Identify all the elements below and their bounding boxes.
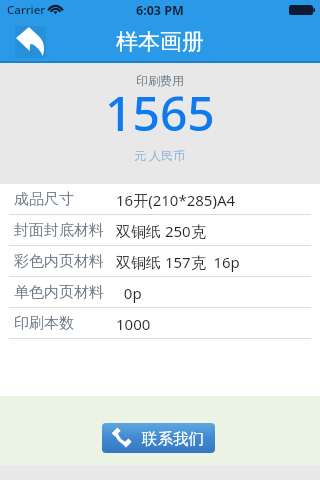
button[interactable]: 印刷本数 xyxy=(0,308,320,339)
staticText: 16开(210*285)A4 xyxy=(116,190,236,210)
staticText: 元 人民币 xyxy=(134,147,186,163)
button[interactable]: 封面封底材料 xyxy=(0,215,320,246)
staticText: Carrier xyxy=(7,2,46,18)
staticText: 彩色内页材料 xyxy=(14,252,104,271)
staticText: 1565 xyxy=(105,80,215,145)
staticText: 样本画册 xyxy=(116,28,204,56)
staticText: 双铜纸 250克 xyxy=(116,221,206,241)
button[interactable]: 联系我们 xyxy=(102,423,215,453)
staticText: 单色内页材料 xyxy=(14,283,104,302)
button[interactable]: Back xyxy=(15,26,46,58)
staticText: 双铜纸 157克 16p xyxy=(116,252,240,272)
staticText: 6:03 PM xyxy=(136,2,184,19)
staticText: 0p xyxy=(116,283,142,303)
button[interactable]: 单色内页材料 xyxy=(0,277,320,308)
staticText: 印刷本数 xyxy=(14,314,74,333)
button[interactable]: 彩色内页材料 xyxy=(0,246,320,277)
staticText: 成品尺寸 xyxy=(14,190,74,209)
staticText: 印刷费用 xyxy=(136,73,184,88)
staticText: 1000 xyxy=(116,314,151,334)
staticText: 封面封底材料 xyxy=(14,221,104,240)
staticText: 联系我们 xyxy=(142,429,204,449)
button[interactable]: 成品尺寸 xyxy=(0,184,320,215)
